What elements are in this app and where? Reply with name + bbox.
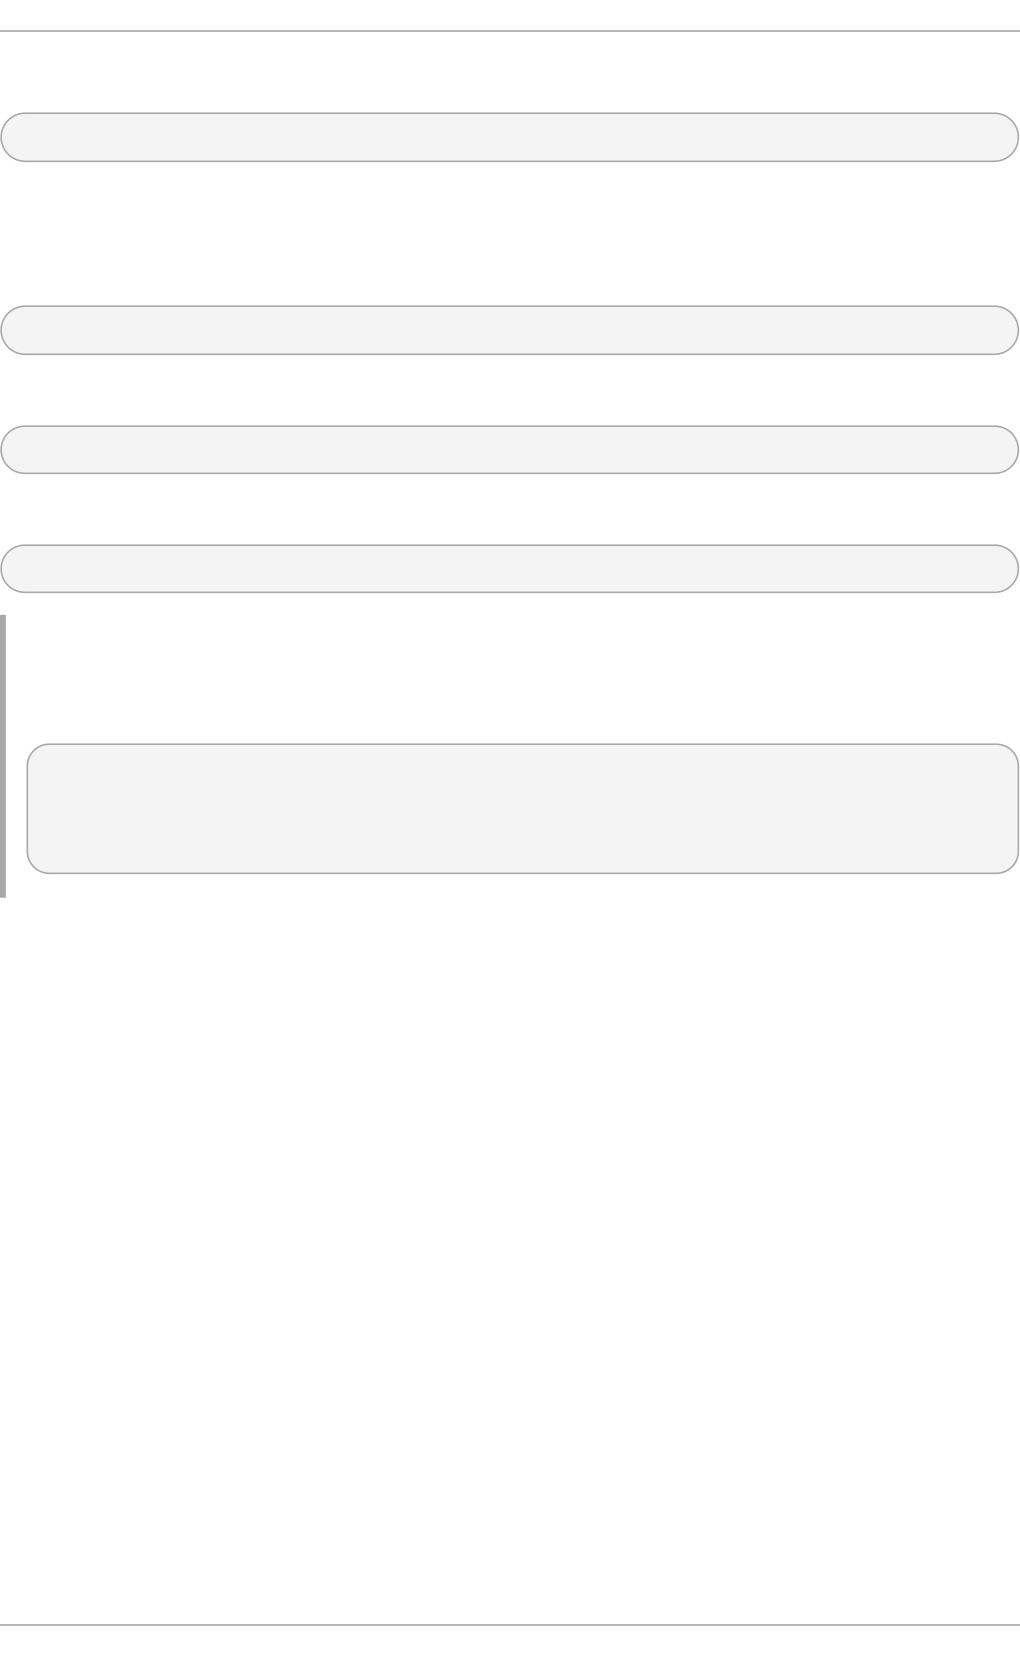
button[interactable]: Loading card [1, 744, 1018, 873]
button[interactable]: Loading item 1 [1, 113, 1018, 161]
button[interactable]: Loading item 3 [1, 426, 1018, 473]
button[interactable]: Loading item 2 [1, 306, 1018, 354]
button[interactable]: Loading item 4 [1, 545, 1018, 592]
